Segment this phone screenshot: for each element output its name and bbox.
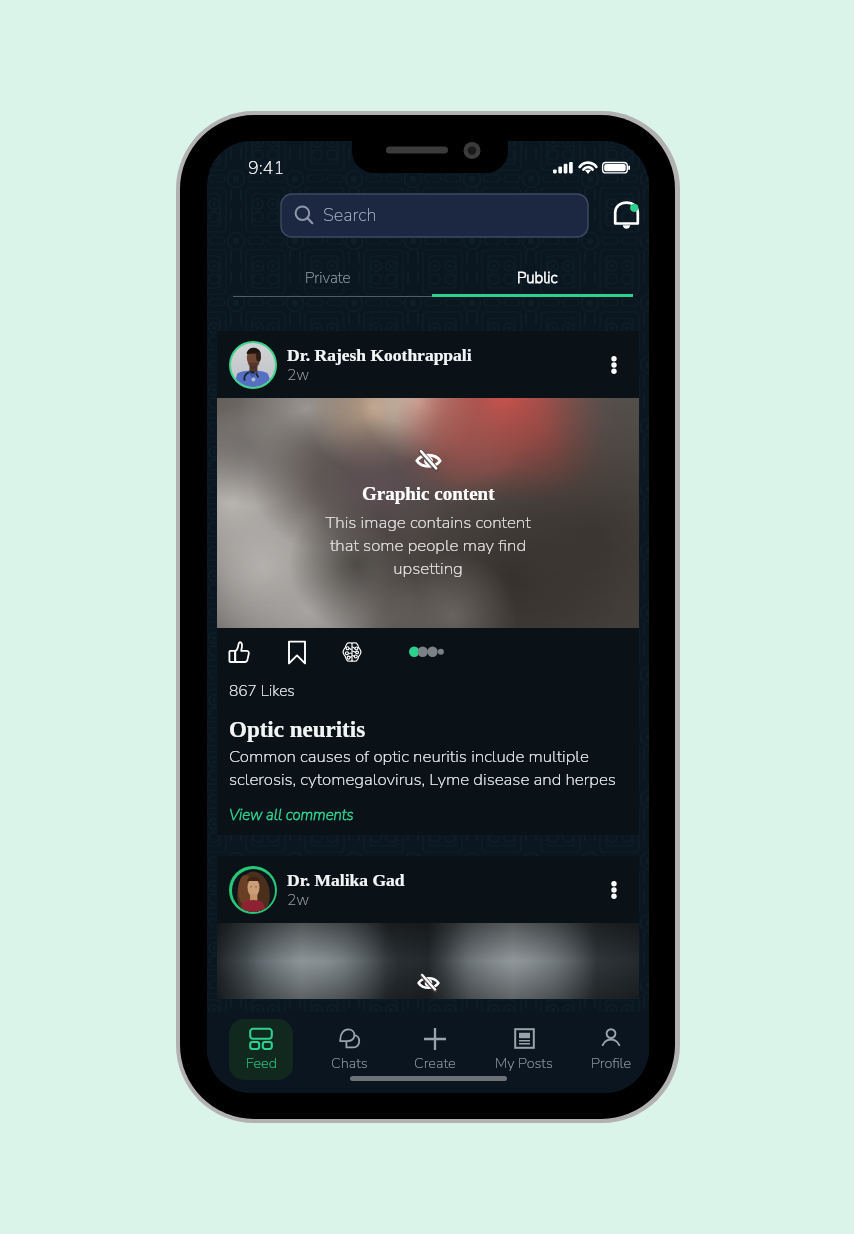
staticText: This image contains content that some pe… bbox=[325, 511, 531, 580]
staticText: Profile bbox=[591, 1053, 632, 1073]
button[interactable]: More options bbox=[599, 875, 629, 905]
button[interactable]: Feed bbox=[229, 1019, 293, 1080]
staticText: Optic neuritis bbox=[229, 717, 366, 742]
staticText: Dr. Malika Gad bbox=[287, 870, 405, 889]
button[interactable]: Create bbox=[403, 1019, 467, 1080]
staticText: 867 Likes bbox=[229, 680, 295, 701]
button[interactable]: Like bbox=[224, 637, 254, 667]
button[interactable]: Chats bbox=[317, 1019, 381, 1080]
staticText: Common causes of optic neuritis include … bbox=[229, 745, 616, 791]
button[interactable]: Save bbox=[282, 637, 312, 667]
button[interactable]: Insights bbox=[337, 637, 367, 667]
button[interactable]: View all comments bbox=[229, 805, 354, 825]
button[interactable]: Search bbox=[281, 194, 588, 237]
staticText: Feed bbox=[246, 1053, 277, 1073]
staticText: My Posts bbox=[495, 1053, 553, 1073]
staticText: Chats bbox=[331, 1053, 368, 1073]
staticText: Graphic content bbox=[362, 483, 495, 504]
staticText: 9:41 bbox=[248, 156, 285, 181]
button[interactable]: My Posts bbox=[492, 1019, 556, 1080]
button[interactable]: Profile bbox=[579, 1019, 643, 1080]
staticText: 2w bbox=[287, 889, 310, 910]
button[interactable]: Private bbox=[228, 260, 427, 296]
staticText: Create bbox=[414, 1053, 456, 1073]
staticText: Search bbox=[323, 203, 377, 228]
staticText: 2w bbox=[287, 364, 310, 385]
button[interactable]: Notifications bbox=[605, 194, 647, 237]
button[interactable]: Public bbox=[437, 260, 638, 296]
staticText: Dr. Rajesh Koothrappali bbox=[287, 345, 472, 364]
staticText: Public bbox=[517, 268, 558, 289]
staticText: Private bbox=[305, 268, 351, 289]
button[interactable]: More options bbox=[599, 350, 629, 380]
